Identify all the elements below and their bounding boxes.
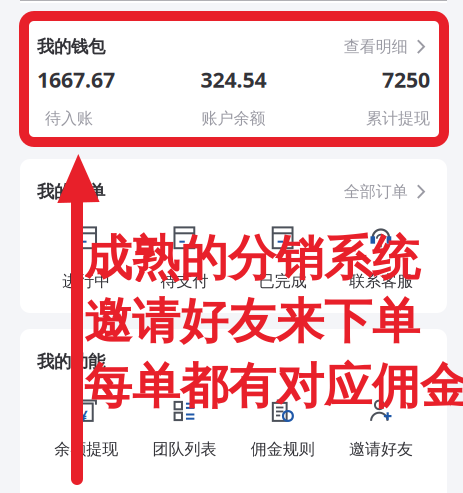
button[interactable]: 佣金规则 [233, 399, 332, 459]
button[interactable]: 查看明细 [344, 37, 430, 56]
staticText: 1667.67 [37, 65, 115, 94]
staticText: 账户余额 [201, 109, 265, 128]
staticText: 待支付 [160, 271, 208, 291]
staticText: 团队列表 [152, 439, 216, 459]
staticText: 佣金规则 [251, 439, 315, 459]
button[interactable]: 进行中 [37, 226, 135, 291]
button[interactable]: 待支付 [135, 226, 233, 291]
staticText: 余额提现 [54, 439, 118, 459]
button[interactable]: ¥ [37, 399, 135, 459]
button[interactable]: 联系客服 [332, 226, 430, 291]
staticText: 我的钱包 [37, 36, 105, 57]
staticText: 累计提现 [366, 109, 430, 128]
staticText: ¥ [79, 405, 87, 425]
staticText: 待入账 [45, 109, 93, 128]
button[interactable]: 全部订单 [344, 182, 430, 201]
staticText: 联系客服 [349, 271, 413, 291]
staticText: 每单都有对应佣金 [84, 357, 463, 416]
button[interactable]: 团队列表 [135, 399, 233, 459]
staticText: 我的功能 [37, 351, 105, 372]
staticText: 进行中 [62, 271, 110, 291]
staticText: 已完成 [259, 271, 307, 291]
staticText: 邀请好友 [349, 439, 413, 459]
button[interactable]: 邀请好友 [332, 399, 430, 459]
staticText: 324.54 [200, 65, 266, 94]
staticText: 我的订单 [37, 181, 105, 202]
button[interactable]: 已完成 [233, 226, 332, 291]
staticText: 邀请好友来下单 [84, 292, 420, 351]
staticText: 全部订单 [344, 182, 408, 201]
staticText: 查看明细 [344, 37, 408, 56]
staticText: 成熟的分销系统 [84, 229, 420, 288]
staticText: 7250 [382, 65, 430, 94]
